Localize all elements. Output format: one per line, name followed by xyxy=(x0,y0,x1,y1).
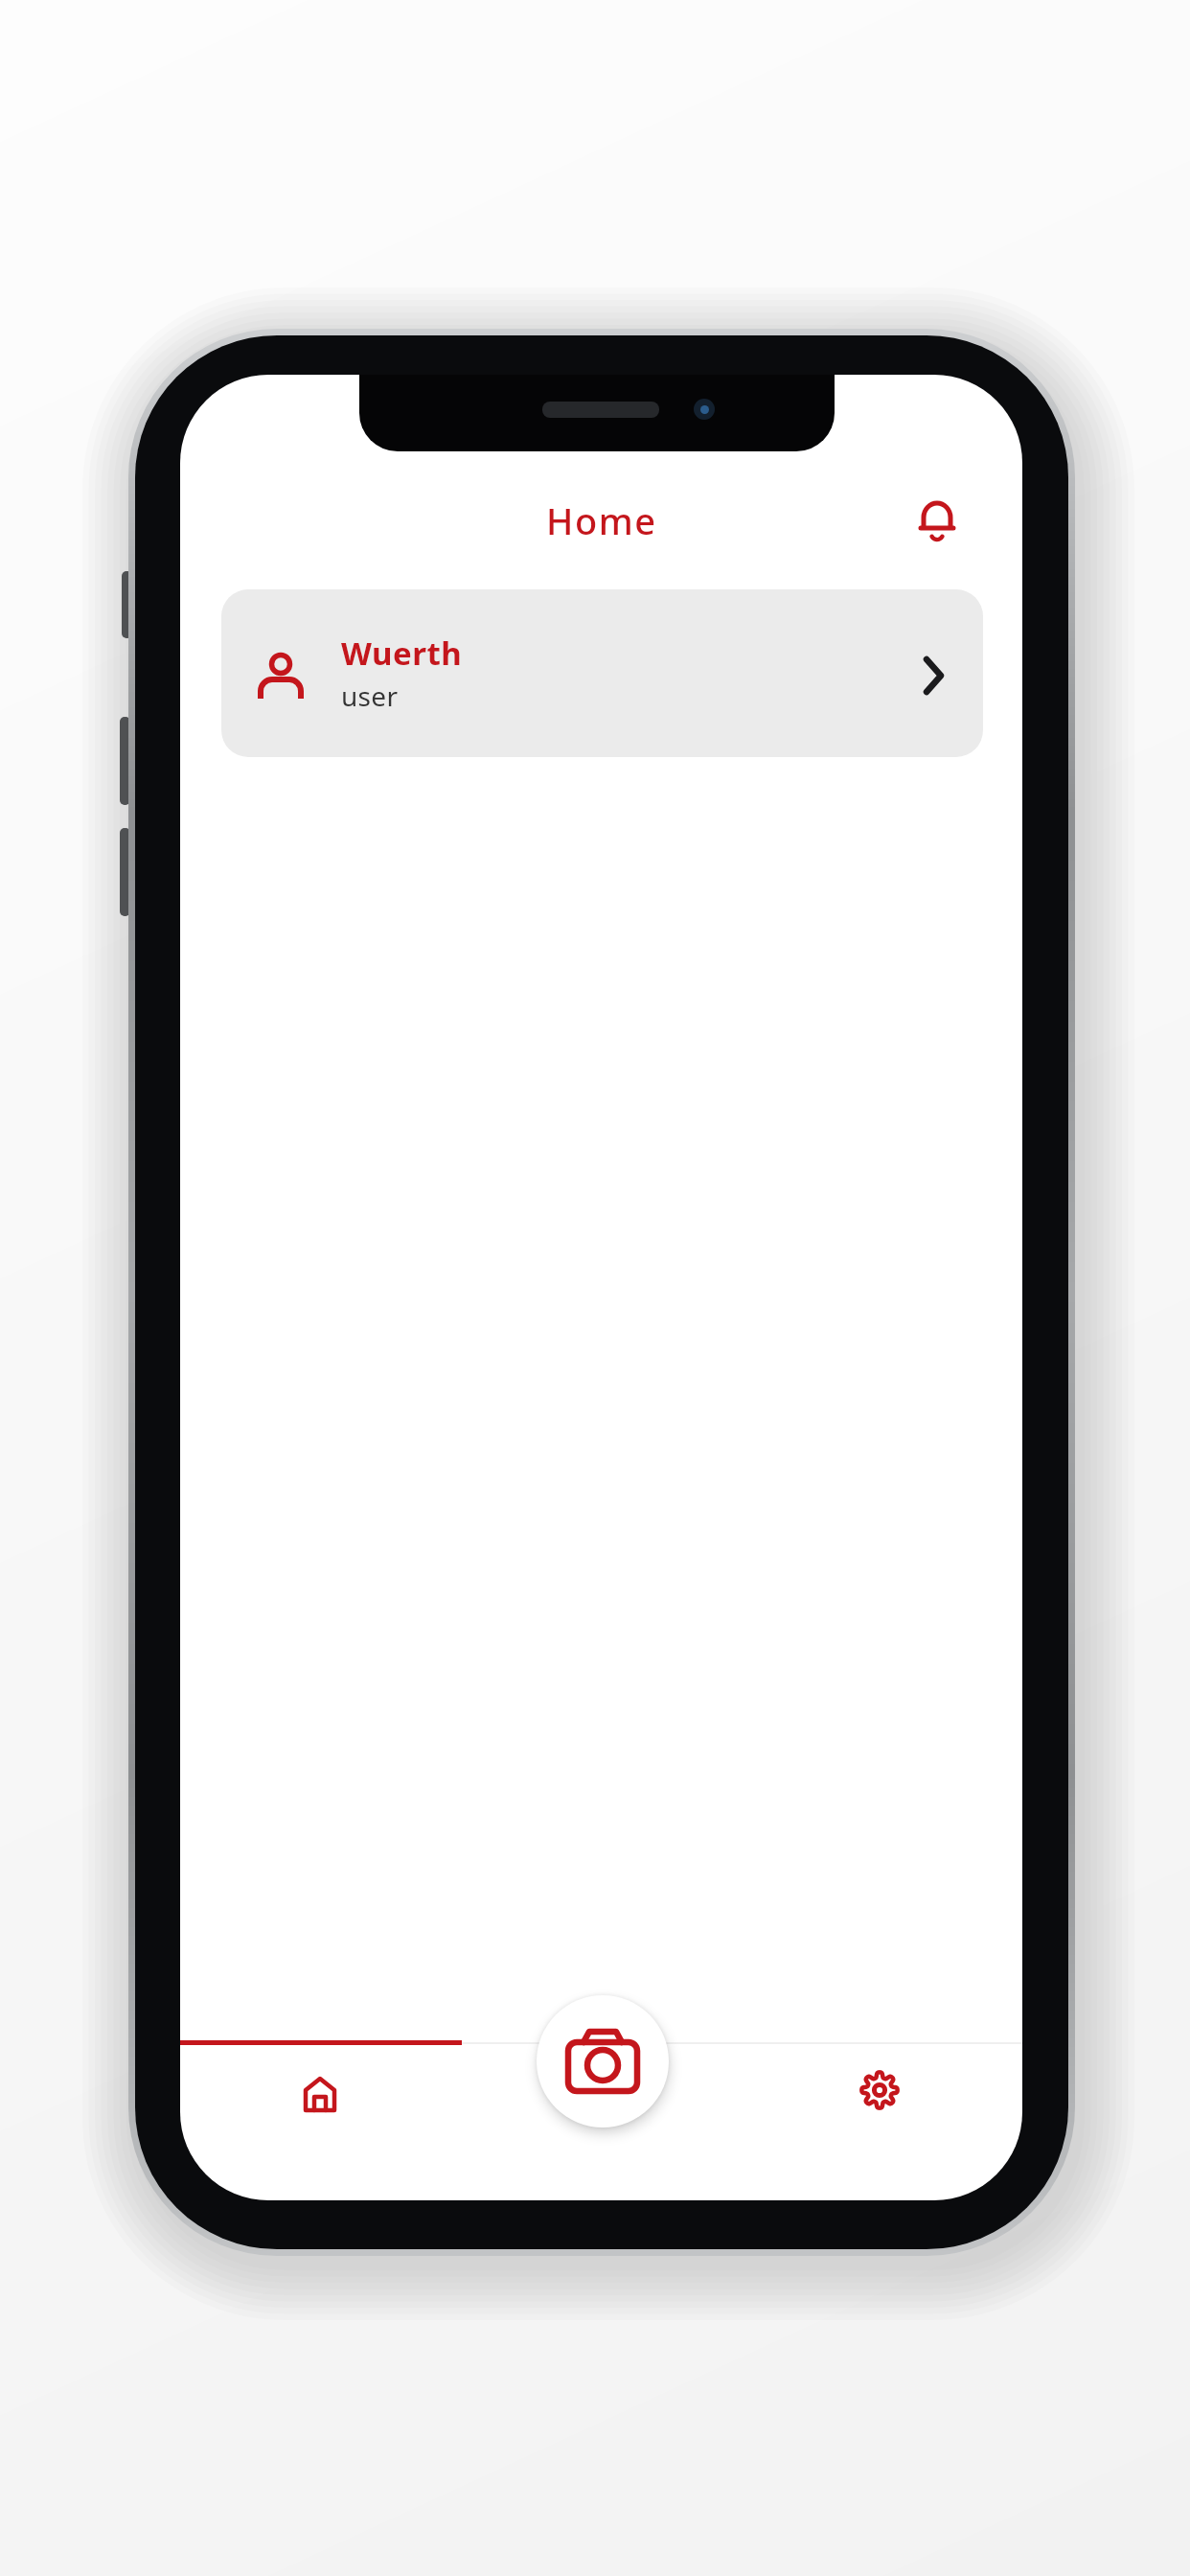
button[interactable] xyxy=(282,2057,358,2133)
staticText: Home xyxy=(546,495,657,545)
button[interactable]: Wuerth xyxy=(221,589,983,757)
button[interactable] xyxy=(919,500,955,542)
staticText: Wuerth xyxy=(341,632,463,675)
staticText: user xyxy=(341,678,399,714)
button[interactable] xyxy=(537,1995,669,2127)
button[interactable] xyxy=(841,2052,918,2128)
